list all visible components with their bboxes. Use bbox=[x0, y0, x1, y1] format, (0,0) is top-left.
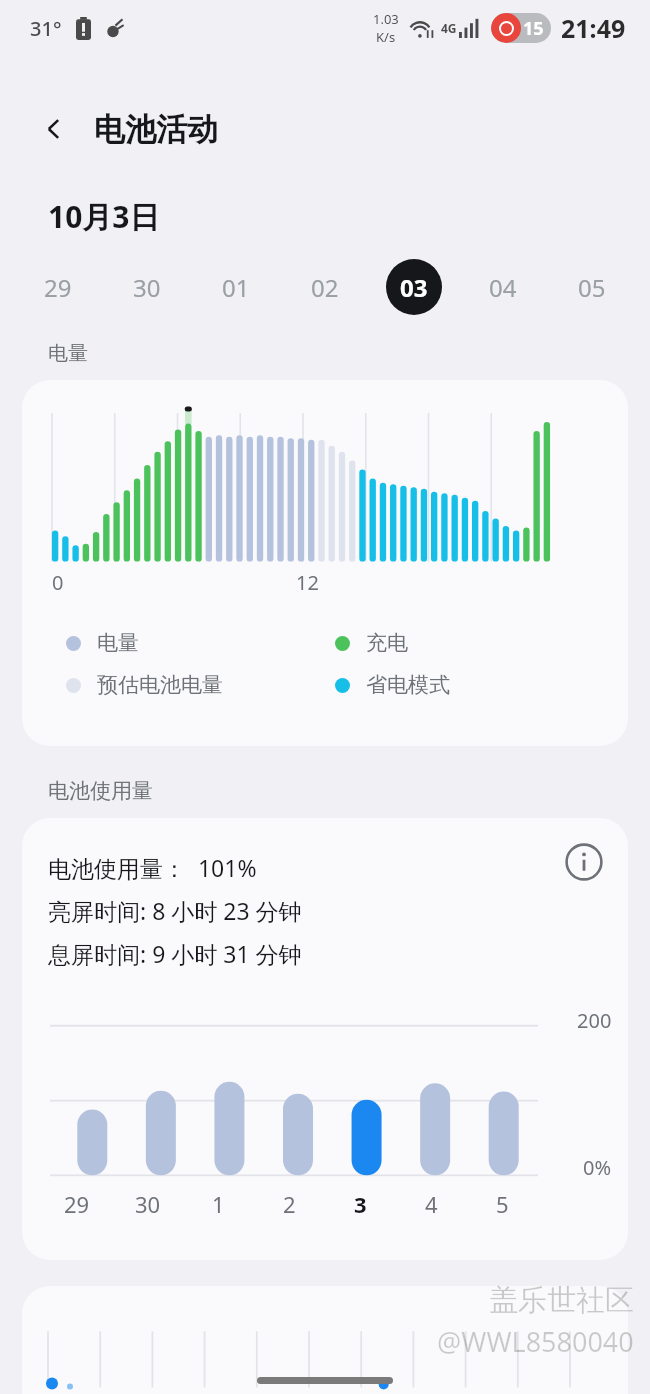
button[interactable]: 29 bbox=[42, 1189, 112, 1219]
staticText: 5 bbox=[496, 1189, 509, 1219]
staticText: 04 bbox=[489, 271, 517, 304]
staticText: 充电 bbox=[366, 630, 408, 656]
staticText: 电池使用量： 101% bbox=[48, 852, 257, 883]
staticText: 30 bbox=[135, 1189, 161, 1219]
button[interactable]: 2 bbox=[254, 1189, 325, 1219]
button[interactable]: 省电模式 bbox=[335, 672, 604, 698]
staticText: 05 bbox=[578, 271, 606, 304]
button[interactable]: 充电 bbox=[335, 630, 604, 656]
button[interactable]: 04 bbox=[475, 259, 531, 315]
button[interactable] bbox=[22, 1286, 628, 1394]
button[interactable]: 电量 bbox=[66, 630, 335, 656]
staticText: 息屏时间: 9 小时 31 分钟 bbox=[48, 938, 302, 969]
staticText: 4 bbox=[425, 1189, 438, 1219]
button[interactable]: 30 bbox=[112, 1189, 183, 1219]
button[interactable]: 05 bbox=[564, 259, 620, 315]
button[interactable]: 01 bbox=[208, 259, 264, 315]
staticText: 1 bbox=[212, 1189, 225, 1219]
button[interactable]: 0 bbox=[22, 380, 628, 746]
staticText: 预估电池电量 bbox=[97, 672, 223, 698]
staticText: 电池使用量 bbox=[48, 778, 153, 804]
button[interactable]: 3 bbox=[325, 1189, 396, 1219]
staticText: 29 bbox=[64, 1189, 90, 1219]
staticText: 12 bbox=[296, 569, 319, 596]
staticText: 31° bbox=[30, 15, 62, 42]
button[interactable]: Back bbox=[32, 107, 76, 151]
staticText: 2 bbox=[283, 1189, 296, 1219]
staticText: 电量 bbox=[97, 630, 139, 656]
staticText: 200 bbox=[577, 1007, 612, 1034]
staticText: 盖乐世社区 bbox=[489, 1282, 634, 1319]
button[interactable]: 29 bbox=[30, 259, 86, 315]
staticText: 0% bbox=[583, 1154, 612, 1181]
staticText: 亮屏时间: 8 小时 23 分钟 bbox=[48, 895, 302, 926]
staticText: 29 bbox=[44, 271, 72, 304]
staticText: 01 bbox=[222, 271, 250, 304]
staticText: 电池活动 bbox=[94, 110, 218, 149]
staticText: 15 bbox=[523, 16, 544, 41]
staticText: 03 bbox=[400, 271, 428, 304]
button[interactable]: 预估电池电量 bbox=[66, 672, 335, 698]
staticText: 1.03 bbox=[373, 10, 399, 28]
button[interactable]: 03 bbox=[386, 259, 442, 315]
staticText: 21:49 bbox=[561, 11, 626, 45]
staticText: 4G bbox=[441, 20, 457, 36]
button[interactable]: Information bbox=[558, 836, 610, 888]
staticText: 30 bbox=[133, 271, 161, 304]
button[interactable]: 30 bbox=[119, 259, 175, 315]
button[interactable]: 5 bbox=[467, 1189, 538, 1219]
button[interactable]: 4 bbox=[396, 1189, 467, 1219]
staticText: K/s bbox=[376, 28, 396, 46]
staticText: 0 bbox=[52, 569, 64, 596]
staticText: 3 bbox=[354, 1189, 367, 1219]
staticText: 省电模式 bbox=[366, 672, 450, 698]
button[interactable]: 02 bbox=[297, 259, 353, 315]
staticText: 02 bbox=[311, 271, 339, 304]
button[interactable]: 1 bbox=[183, 1189, 254, 1219]
staticText: 10月3日 bbox=[48, 196, 160, 237]
staticText: @WWL8580040 bbox=[437, 1323, 634, 1360]
staticText: 电量 bbox=[48, 341, 88, 366]
button[interactable]: Information bbox=[22, 818, 628, 1260]
